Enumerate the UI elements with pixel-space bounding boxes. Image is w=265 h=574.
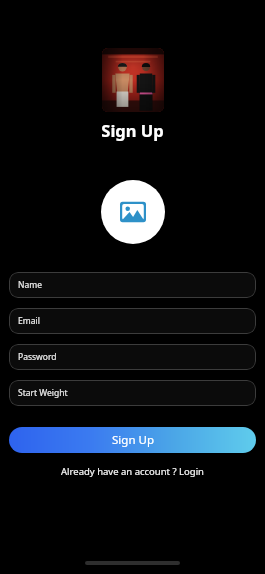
staticText: Email bbox=[18, 315, 40, 327]
staticText: Password bbox=[18, 351, 57, 363]
button[interactable]: Profile photo bbox=[102, 48, 164, 112]
button[interactable]: Already have an account ? Login bbox=[55, 463, 210, 480]
staticText: Sign Up bbox=[112, 432, 154, 448]
button[interactable]: Name bbox=[9, 272, 256, 298]
button[interactable]: Email bbox=[9, 308, 256, 334]
button[interactable]: Pick image bbox=[101, 180, 165, 244]
button[interactable]: Password bbox=[9, 344, 256, 370]
staticText: Sign Up bbox=[101, 119, 164, 141]
staticText: Start Weight bbox=[18, 387, 68, 399]
staticText: Already have an account ? Login bbox=[61, 465, 204, 478]
button[interactable]: Start Weight bbox=[9, 380, 256, 406]
button[interactable]: Sign Up bbox=[9, 427, 256, 453]
staticText: Name bbox=[18, 279, 42, 291]
